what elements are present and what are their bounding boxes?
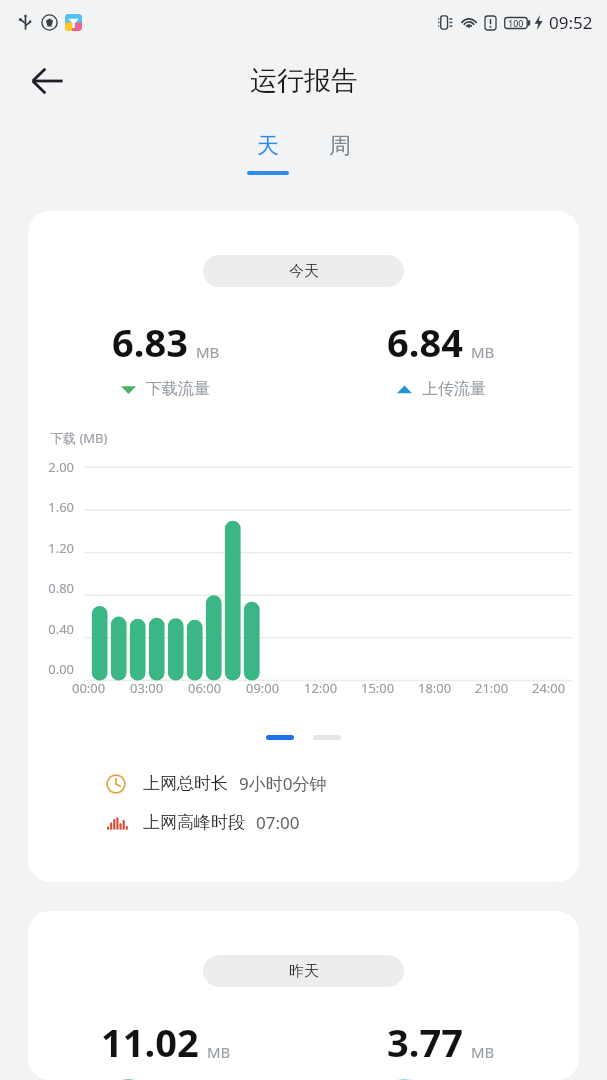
- staticText: MB: [471, 342, 495, 362]
- staticText: 周: [329, 132, 351, 160]
- staticText: MB: [471, 1042, 495, 1062]
- staticText: 下载 (MB): [50, 429, 108, 447]
- staticText: MB: [196, 342, 220, 362]
- staticText: 6.83: [112, 316, 188, 368]
- staticText: 09:52: [549, 11, 593, 34]
- staticText: 昨天: [289, 962, 319, 981]
- staticText: 03:00: [130, 679, 164, 697]
- staticText: 3.77: [387, 1016, 463, 1068]
- staticText: 100: [508, 17, 524, 29]
- staticText: 18:00: [418, 679, 452, 697]
- button[interactable]: 周: [304, 118, 376, 184]
- button[interactable]: 第一页: [266, 735, 294, 740]
- staticText: 24:00: [532, 679, 566, 697]
- staticText: 9小时0分钟: [239, 772, 327, 795]
- staticText: MB: [207, 1042, 231, 1062]
- staticText: 0.00: [28, 660, 74, 678]
- staticText: 0.40: [28, 620, 74, 638]
- staticText: 上传流量: [422, 379, 486, 399]
- button[interactable]: 今天: [28, 211, 579, 882]
- button[interactable]: 昨天: [28, 911, 579, 1080]
- staticText: 运行报告: [250, 64, 358, 98]
- staticText: 1.20: [28, 539, 74, 557]
- staticText: 2.00: [28, 458, 74, 476]
- button[interactable]: 第二页: [313, 735, 341, 740]
- button[interactable]: 返回: [20, 54, 74, 108]
- staticText: 1.60: [28, 498, 74, 516]
- button[interactable]: 今天: [203, 255, 404, 287]
- staticText: 今天: [289, 262, 319, 281]
- staticText: 09:00: [246, 679, 280, 697]
- staticText: 07:00: [256, 811, 300, 834]
- staticText: 天: [257, 132, 279, 160]
- staticText: 下载流量: [146, 379, 210, 399]
- staticText: 12:00: [304, 679, 338, 697]
- staticText: 上网总时长: [143, 773, 228, 794]
- button[interactable]: 昨天: [203, 955, 404, 987]
- button[interactable]: 天: [232, 118, 304, 184]
- staticText: 06:00: [188, 679, 222, 697]
- staticText: 上网高峰时段: [143, 812, 245, 833]
- staticText: 00:00: [72, 679, 106, 697]
- staticText: 15:00: [361, 679, 395, 697]
- staticText: 21:00: [475, 679, 509, 697]
- staticText: 11.02: [101, 1016, 199, 1068]
- staticText: 6.84: [387, 316, 463, 368]
- staticText: 0.80: [28, 579, 74, 597]
